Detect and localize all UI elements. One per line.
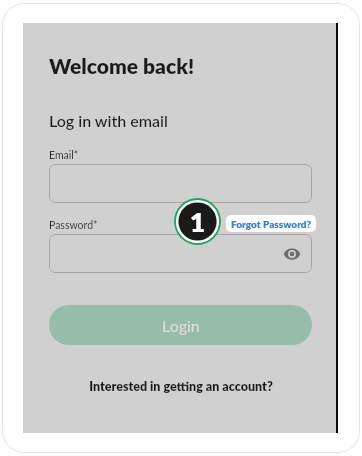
staticText: Password* bbox=[49, 219, 98, 232]
staticText: Welcome back! bbox=[49, 53, 195, 78]
button[interactable]: Show password bbox=[280, 242, 304, 266]
button[interactable]: Interested in getting an account? bbox=[89, 379, 273, 394]
button[interactable]: Forgot Password? bbox=[226, 215, 316, 232]
staticText: Email* bbox=[49, 149, 79, 162]
button[interactable] bbox=[49, 164, 312, 203]
staticText: Forgot Password? bbox=[231, 218, 312, 230]
staticText: Log in with email bbox=[49, 111, 168, 130]
staticText: Login bbox=[162, 316, 200, 335]
staticText: 1 bbox=[190, 206, 206, 237]
button[interactable]: Show password bbox=[49, 234, 312, 273]
button[interactable]: Login bbox=[49, 305, 312, 345]
